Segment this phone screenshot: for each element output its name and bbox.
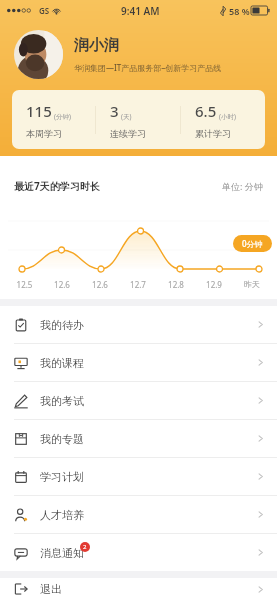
staticText: 消息通知 [40,546,84,560]
staticText: 12.7 [119,279,157,290]
staticText: (分钟) [54,112,71,121]
staticText: 0分钟 [242,238,263,249]
other: 打开 我的专题 [256,434,265,443]
other: 打开 退出 [256,585,265,594]
staticText: 12.8 [157,279,195,290]
staticText: 单位: 分钟 [222,180,263,192]
staticText: 12.6 [81,279,119,290]
other: 打开 我的课程 [256,358,265,367]
staticText: 退出 [40,582,62,596]
staticText: (小时) [219,112,236,121]
staticText: 昨天 [233,279,271,289]
button[interactable]: 消息通知 [0,534,277,571]
staticText: 最近7天的学习时长 [14,179,100,193]
staticText: 3 [110,101,119,121]
staticText: 学习计划 [40,470,84,484]
button[interactable]: 学习计划 [0,458,277,496]
staticText: 12.6 [43,279,81,290]
button[interactable]: 退出 [0,578,277,600]
other: 打开 学习计划 [256,472,265,481]
button[interactable]: 我的考试 [0,382,277,420]
staticText: 人才培养 [40,508,84,522]
staticText: 我的考试 [40,394,84,408]
other: 打开 人才培养 [256,510,265,519]
staticText: 连续学习 [110,128,146,139]
staticText: (天) [121,112,132,121]
staticText: 2 [83,543,87,551]
staticText: 115 [26,101,52,121]
staticText: 润小润 [74,36,119,55]
staticText: 我的待办 [40,318,84,332]
staticText: 12.5 [6,279,43,290]
button[interactable]: 人才培养 [0,496,277,534]
staticText: 9:41 AM [121,4,160,18]
other: 打开 消息通知 [256,548,265,557]
button[interactable]: 我的课程 [0,344,277,382]
staticText: 12.9 [195,279,233,290]
button[interactable]: 我的待办 [0,306,277,344]
button[interactable]: 润小润 [14,30,263,79]
staticText: 我的课程 [40,356,84,370]
staticText: 本周学习 [26,128,62,139]
staticText: 58 % [229,5,250,17]
other: 打开 我的考试 [256,396,265,405]
button[interactable]: 我的专题 [0,420,277,458]
staticText: 华润集团—IT产品服务部–创新学习产品线 [74,62,222,73]
staticText: 6.5 [195,101,217,121]
staticText: 我的专题 [40,432,84,446]
button[interactable]: 0分钟 [233,235,272,252]
other: 打开 我的待办 [256,320,265,329]
staticText: 累计学习 [195,128,231,139]
staticText: GS [39,5,50,16]
